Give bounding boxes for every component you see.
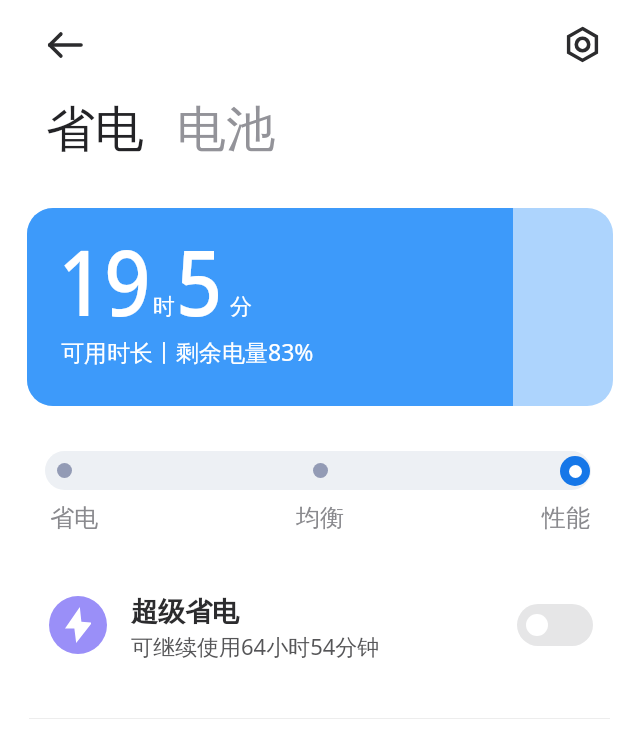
button[interactable]: 超级省电开关 [517, 604, 593, 646]
staticText: 分 [230, 293, 252, 321]
staticText: 超级省电 [131, 595, 239, 629]
staticText: 电池 [177, 99, 275, 161]
button[interactable]: 性能 [410, 503, 590, 533]
button[interactable]: 超级省电 [0, 568, 640, 682]
staticText: 可用时长丨剩余电量83% [61, 336, 314, 367]
button[interactable]: 均衡 [230, 503, 410, 533]
button[interactable]: 19 [27, 208, 613, 406]
staticText: 时 [153, 293, 175, 321]
staticText: 19 [58, 220, 151, 343]
staticText: 5 [176, 220, 223, 343]
button[interactable]: 省电 [46, 99, 144, 161]
staticText: 省电 [46, 99, 144, 161]
button[interactable]: Back [36, 16, 93, 73]
button[interactable]: Settings [554, 16, 611, 73]
button[interactable]: 均衡模式 [313, 463, 328, 478]
button[interactable]: 电池 [177, 99, 275, 161]
staticText: 可继续使用64小时54分钟 [131, 631, 380, 661]
button[interactable]: 省电模式 [57, 463, 72, 478]
button[interactable]: 省电 [50, 503, 230, 533]
button[interactable]: 性能模式 [560, 456, 590, 486]
